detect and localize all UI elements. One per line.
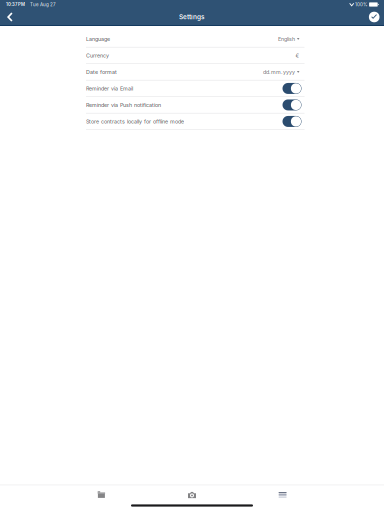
staticText: Settings	[179, 13, 205, 21]
staticText: Tue Aug 27	[30, 2, 56, 7]
button[interactable]: Menu	[237, 488, 328, 501]
button[interactable]: Documents	[56, 488, 147, 501]
staticText: Reminder via Email	[86, 85, 133, 92]
button[interactable]: Reminder via Email	[86, 80, 304, 97]
button[interactable]: Currency	[86, 47, 304, 64]
button[interactable]: Store contracts locally for offline mode	[86, 113, 304, 130]
button[interactable]: Date format	[86, 64, 304, 80]
staticText: Language	[86, 36, 110, 42]
staticText: 10:37 PM	[6, 2, 25, 7]
button[interactable]: Scan	[147, 488, 237, 501]
staticText: 100%	[354, 2, 367, 7]
staticText: Currency	[86, 52, 109, 59]
button[interactable]: Back	[0, 9, 19, 25]
staticText: Store contracts locally for offline mode	[86, 118, 184, 125]
staticText: Reminder via Push notification	[86, 102, 161, 108]
staticText: dd.mm.yyyy	[263, 69, 295, 75]
button[interactable]: Reminder via Push notification	[86, 97, 304, 113]
staticText: English	[278, 36, 295, 42]
button[interactable]: Done	[362, 9, 384, 25]
button[interactable]: Language	[86, 31, 304, 47]
staticText: Date format	[86, 69, 117, 75]
staticText: €	[295, 52, 299, 59]
